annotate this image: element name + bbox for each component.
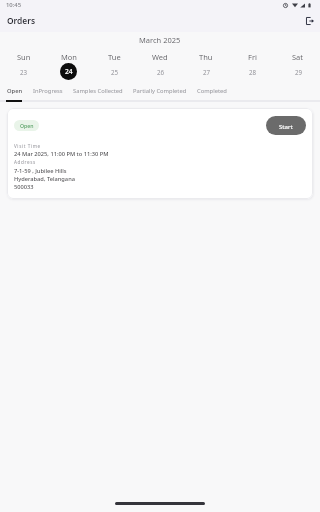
staticText: Sat <box>292 52 304 62</box>
staticText: Fri <box>248 52 257 62</box>
staticText: 7-1-59 , Jubilee Hills Hyderabad, Telang… <box>14 167 75 191</box>
button[interactable]: Partially Completed <box>128 87 192 102</box>
button[interactable]: Sat <box>275 52 320 80</box>
button[interactable]: Wed <box>137 52 183 80</box>
button[interactable]: Samples Collected <box>68 87 128 102</box>
staticText: InProgress <box>33 87 63 95</box>
button[interactable]: Thu <box>183 52 229 80</box>
staticText: 24 <box>65 67 73 76</box>
button[interactable]: Tue <box>91 52 137 80</box>
button[interactable]: Open <box>7 108 313 199</box>
staticText: March 2025 <box>139 35 181 45</box>
staticText: Orders <box>7 15 36 26</box>
staticText: Address <box>14 159 36 165</box>
staticText: 25 <box>111 68 119 76</box>
button[interactable]: InProgress <box>28 87 68 102</box>
button[interactable]: Completed <box>192 87 232 102</box>
button[interactable]: Fri <box>229 52 275 80</box>
staticText: Thu <box>199 52 213 62</box>
staticText: 28 <box>249 68 257 76</box>
staticText: Mon <box>61 52 77 62</box>
staticText: Completed <box>197 87 227 95</box>
staticText: Start <box>279 122 293 130</box>
button[interactable]: Sun <box>1 52 46 80</box>
staticText: Wed <box>152 52 168 62</box>
staticText: 24 Mar 2025, 11:00 PM to 11:30 PM <box>14 150 109 158</box>
button[interactable]: Open <box>2 87 28 102</box>
staticText: Open <box>20 122 34 129</box>
staticText: Visit Time <box>14 143 41 149</box>
staticText: 29 <box>295 68 303 76</box>
staticText: Samples Collected <box>73 87 123 95</box>
staticText: Open <box>7 87 23 95</box>
staticText: 10:45 <box>6 1 22 9</box>
button[interactable]: Start <box>266 116 306 135</box>
staticText: 27 <box>203 68 211 76</box>
staticText: 23 <box>20 68 28 76</box>
button[interactable]: Mon <box>46 52 91 80</box>
staticText: Sun <box>17 52 31 62</box>
staticText: Tue <box>108 52 121 62</box>
staticText: 26 <box>157 68 165 76</box>
button[interactable]: Logout <box>303 14 316 27</box>
staticText: Partially Completed <box>133 87 187 95</box>
